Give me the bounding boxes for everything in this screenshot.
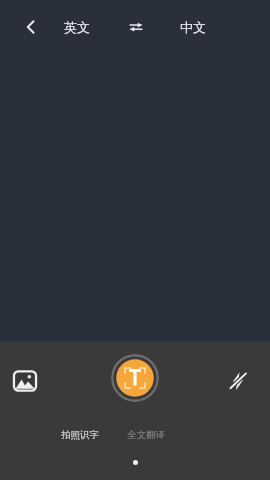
button[interactable]: Swap languages: [122, 13, 150, 41]
staticText: 中文: [180, 19, 206, 35]
button[interactable]: 拍照识字: [52, 426, 108, 444]
button[interactable]: 中文: [172, 13, 214, 41]
button[interactable]: Gallery: [11, 367, 39, 395]
button[interactable]: Capture and recognize text: [111, 354, 159, 402]
button[interactable]: 全文翻译: [118, 426, 174, 444]
button[interactable]: 英文: [56, 13, 98, 41]
button[interactable]: Flash off: [224, 367, 252, 395]
staticText: 英文: [64, 19, 90, 35]
button[interactable]: Back: [16, 12, 46, 42]
staticText: 全文翻译: [127, 429, 165, 441]
staticText: 拍照识字: [61, 429, 99, 441]
